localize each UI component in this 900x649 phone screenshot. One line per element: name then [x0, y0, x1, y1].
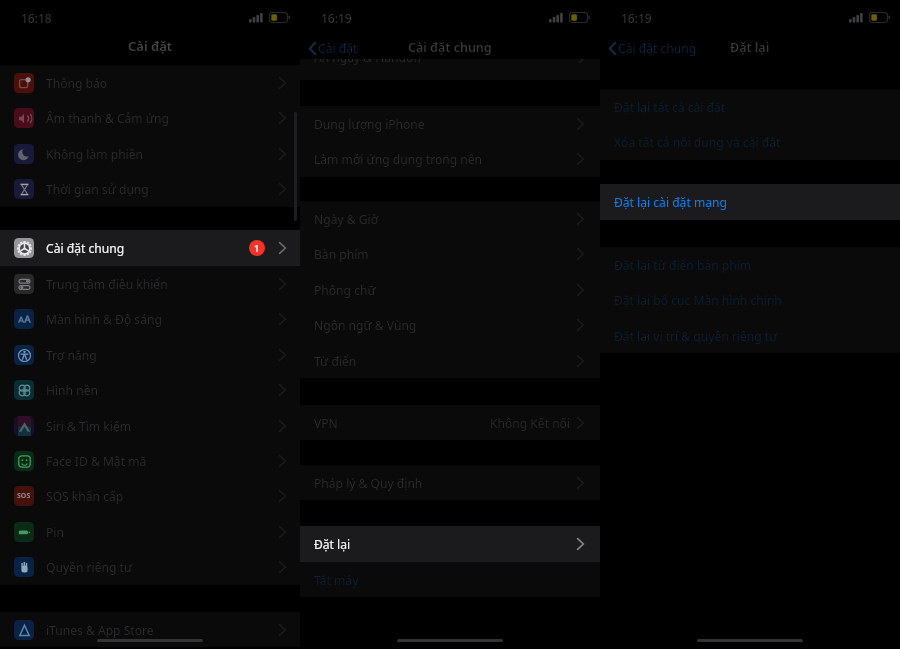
staticText: Dung lượng iPhone: [314, 116, 425, 132]
button[interactable]: Thời gian sử dụng: [0, 171, 300, 207]
staticText: Thời gian sử dụng: [46, 181, 149, 197]
staticText: Trợ năng: [46, 347, 97, 363]
button[interactable]: Đặt lại từ điển bàn phím: [600, 247, 900, 282]
staticText: Không làm phiền: [46, 146, 144, 162]
staticText: Đặt lại tất cả cài đặt: [614, 99, 726, 115]
button[interactable]: Hình nền: [0, 372, 300, 408]
button[interactable]: Đặt lại bố cục Màn hình chính: [600, 282, 900, 318]
button[interactable]: Dung lượng iPhone: [300, 106, 600, 141]
staticText: SOS: [17, 491, 31, 501]
button[interactable]: Phông chữ: [300, 272, 600, 307]
button[interactable]: Đặt lại vị trí & quyền riêng tư: [600, 318, 900, 353]
button[interactable]: iTunes & App Store: [0, 612, 300, 647]
staticText: Làm mới ứng dụng trong nền: [314, 151, 483, 167]
staticText: Đặt lại vị trí & quyền riêng tư: [614, 328, 778, 344]
staticText: 16:18: [21, 10, 52, 26]
staticText: Cài đặt: [128, 37, 173, 55]
staticText: Bàn phím: [314, 246, 369, 262]
button[interactable]: Pháp lý & Quy định: [300, 465, 600, 500]
staticText: Thông báo: [46, 75, 108, 91]
button[interactable]: Đặt lại: [300, 526, 600, 562]
staticText: Cài đặt chung: [408, 39, 492, 56]
button[interactable]: SOS: [0, 478, 300, 514]
button[interactable]: Bàn phím: [300, 236, 600, 272]
staticText: Siri & Tìm kiếm: [46, 418, 132, 434]
staticText: Đặt lại bố cục Màn hình chính: [614, 292, 782, 308]
button[interactable]: Cài đặt chung: [0, 230, 300, 266]
staticText: Màn hình & Độ sáng: [46, 311, 162, 327]
staticText: 16:19: [321, 10, 352, 26]
button[interactable]: Từ điển: [300, 343, 600, 378]
button[interactable]: Back: [609, 40, 697, 56]
button[interactable]: Xóa tất cả nội dung và cài đặt: [600, 124, 900, 160]
staticText: Không Kết nối: [490, 415, 571, 431]
button[interactable]: VPN: [300, 405, 600, 440]
button[interactable]: Siri & Tìm kiếm: [0, 408, 300, 443]
staticText: SOS khẩn cấp: [46, 488, 124, 504]
staticText: Face ID & Mật mã: [46, 453, 147, 469]
button[interactable]: Đặt lại cài đặt mạng: [600, 184, 900, 220]
button[interactable]: Ngày & Giờ: [300, 201, 600, 236]
staticText: Pháp lý & Quy định: [314, 475, 423, 491]
staticText: Hình nền: [46, 382, 98, 398]
staticText: Đặt lại cài đặt mạng: [614, 194, 727, 210]
staticText: 16:19: [621, 10, 652, 26]
staticText: Cài đặt: [318, 40, 358, 56]
staticText: Ngày & Giờ: [314, 211, 379, 227]
button[interactable]: Pin: [0, 514, 300, 549]
staticText: Ẩn ngay & Handoff: [314, 59, 422, 65]
staticText: Trung tâm điều khiển: [46, 276, 168, 292]
staticText: Từ điển: [314, 353, 357, 369]
staticText: 1: [254, 242, 260, 255]
staticText: Pin: [46, 524, 64, 540]
staticText: Đặt lại: [730, 39, 770, 56]
staticText: Quyền riêng tư: [46, 559, 133, 575]
staticText: Tắt máy: [314, 572, 359, 588]
staticText: Ngôn ngữ & Vùng: [314, 317, 417, 333]
button[interactable]: Ngôn ngữ & Vùng: [300, 307, 600, 343]
button[interactable]: Không làm phiền: [0, 136, 300, 171]
button[interactable]: Quyền riêng tư: [0, 549, 300, 585]
button[interactable]: Trung tâm điều khiển: [0, 266, 300, 301]
staticText: Đặt lại từ điển bàn phím: [614, 257, 752, 273]
staticText: Đặt lại: [314, 536, 351, 552]
staticText: Phông chữ: [314, 282, 376, 298]
staticText: Xóa tất cả nội dung và cài đặt: [614, 134, 781, 150]
button[interactable]: Đặt lại tất cả cài đặt: [600, 89, 900, 124]
button[interactable]: Màn hình & Độ sáng: [0, 301, 300, 337]
staticText: Cài đặt chung: [618, 40, 697, 56]
button[interactable]: Âm thanh & Cảm ứng: [0, 100, 300, 136]
button[interactable]: Face ID & Mật mã: [0, 443, 300, 478]
staticText: VPN: [314, 415, 338, 431]
staticText: Cài đặt chung: [46, 240, 125, 256]
staticText: Âm thanh & Cảm ứng: [46, 110, 169, 126]
button[interactable]: Thông báo: [0, 65, 300, 100]
staticText: iTunes & App Store: [46, 622, 154, 638]
button[interactable]: Trợ năng: [0, 337, 300, 372]
button[interactable]: Tắt máy: [300, 562, 600, 597]
button[interactable]: Làm mới ứng dụng trong nền: [300, 141, 600, 177]
button[interactable]: Back: [309, 40, 358, 56]
